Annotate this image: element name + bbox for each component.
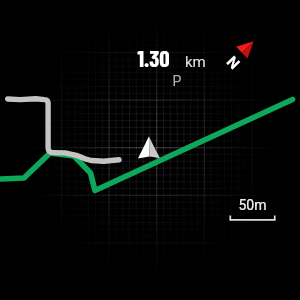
button[interactable]: Map [0,0,300,300]
